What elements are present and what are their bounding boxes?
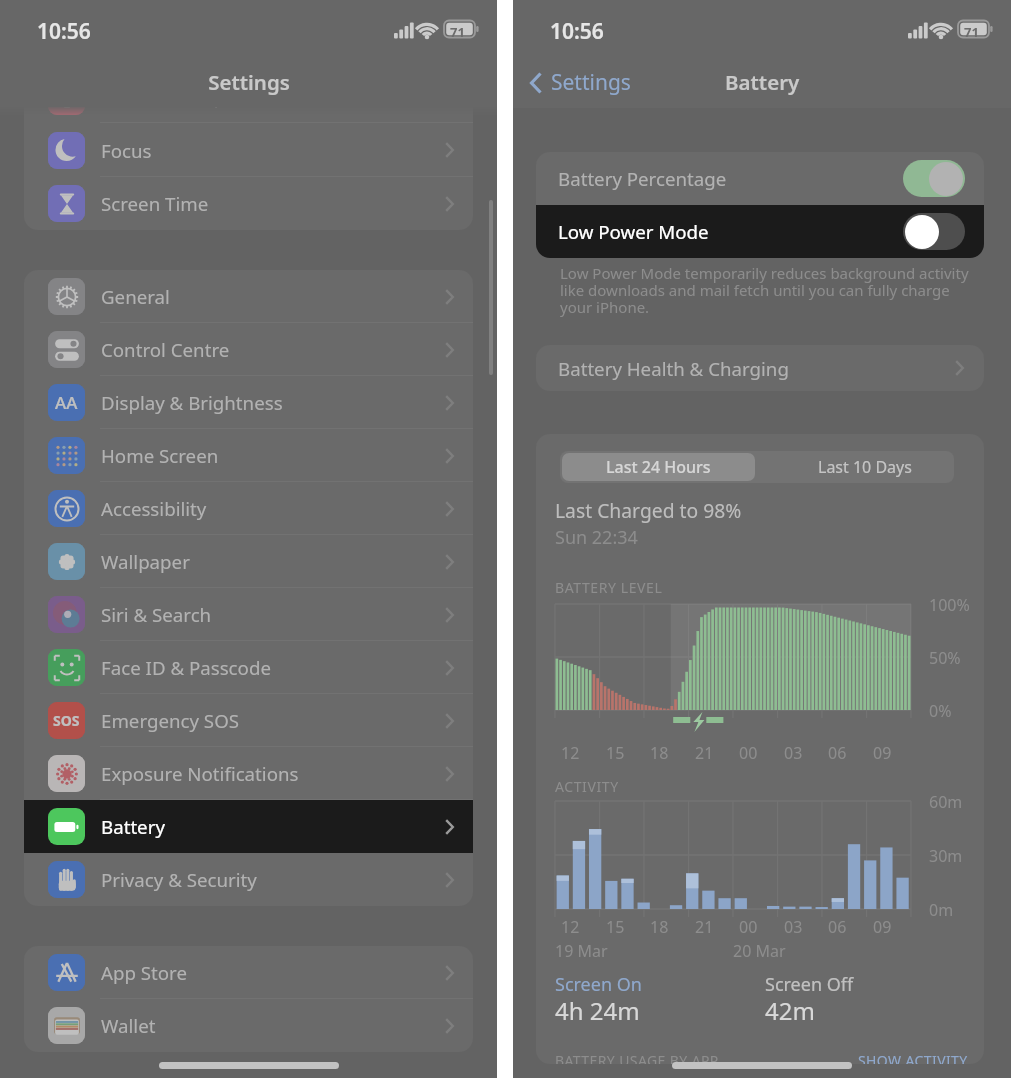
staticText: 21	[695, 742, 714, 764]
button[interactable]: Accessibility	[24, 482, 473, 535]
button[interactable]: Wallet	[24, 999, 473, 1052]
button[interactable]: Control Centre	[24, 323, 473, 376]
staticText: Settings	[551, 68, 631, 97]
staticText: 42m	[765, 994, 815, 1027]
staticText: 12	[561, 742, 580, 764]
staticText: SOS	[53, 711, 80, 730]
staticText: Battery	[725, 68, 800, 96]
staticText: 19 Mar	[555, 940, 608, 962]
staticText: Last 24 Hours	[606, 456, 711, 478]
button[interactable]: Settings	[530, 68, 631, 97]
button[interactable]: Battery Percentage	[536, 152, 984, 205]
staticText: 15	[606, 916, 625, 938]
staticText: ACTIVITY	[555, 777, 619, 796]
staticText: 10:56	[37, 17, 91, 46]
staticText: 30m	[929, 845, 963, 867]
staticText: Sounds & Haptics	[101, 84, 255, 109]
staticText: Display & Brightness	[101, 390, 283, 415]
staticText: Settings	[208, 68, 290, 96]
button[interactable]: Siri & Search	[24, 588, 473, 641]
staticText: 100%	[929, 594, 970, 616]
button[interactable]: General	[24, 270, 473, 323]
button[interactable]: Last 10 Days	[757, 451, 954, 483]
staticText: 60m	[929, 791, 963, 813]
staticText: Control Centre	[101, 337, 230, 362]
staticText: Screen Time	[101, 191, 209, 216]
staticText: Sun 22:34	[555, 525, 638, 550]
staticText: 4h 24m	[555, 994, 640, 1027]
staticText: Focus	[101, 138, 152, 163]
staticText: General	[101, 284, 170, 309]
staticText: Screen On	[555, 972, 642, 997]
button[interactable]: Home Screen	[24, 429, 473, 482]
staticText: Low Power Mode	[558, 219, 709, 244]
button[interactable]: Privacy & Security	[24, 853, 473, 906]
staticText: SHOW ACTIVITY	[858, 1051, 968, 1064]
staticText: 12	[561, 916, 580, 938]
staticText: 09	[873, 916, 892, 938]
staticText: 18	[650, 742, 669, 764]
staticText: Wallet	[101, 1013, 156, 1038]
staticText: Wallpaper	[101, 549, 190, 574]
staticText: AA	[55, 391, 78, 414]
staticText: 50%	[929, 647, 961, 669]
staticText: 09	[873, 742, 892, 764]
button[interactable]: Exposure Notifications	[24, 747, 473, 800]
staticText: Exposure Notifications	[101, 761, 299, 786]
staticText: Emergency SOS	[101, 708, 239, 733]
staticText: Last Charged to 98%	[555, 497, 742, 523]
staticText: Low Power Mode temporarily reduces backg…	[560, 263, 969, 317]
button[interactable]: Low Power Mode	[536, 205, 984, 258]
button[interactable]: Screen Time	[24, 177, 473, 230]
staticText: 71	[964, 23, 979, 41]
staticText: 0%	[929, 700, 952, 722]
button[interactable]: AA	[24, 376, 473, 429]
staticText: 71	[450, 23, 465, 41]
staticText: App Store	[101, 960, 187, 985]
button[interactable]: Wallpaper	[24, 535, 473, 588]
staticText: Battery	[101, 814, 165, 839]
button[interactable]: Face ID & Passcode	[24, 641, 473, 694]
staticText: 06	[828, 742, 847, 764]
button[interactable]: SHOW ACTIVITY	[854, 1047, 972, 1064]
button[interactable]: Focus	[24, 123, 473, 177]
staticText: 21	[695, 916, 714, 938]
staticText: Screen Off	[765, 972, 854, 997]
staticText: BATTERY USAGE BY APP	[555, 1051, 719, 1064]
staticText: Battery Percentage	[558, 166, 727, 191]
button[interactable]: Battery	[24, 800, 473, 853]
staticText: Home Screen	[101, 443, 219, 468]
button[interactable]: Battery Health & Charging	[536, 345, 984, 391]
button[interactable]: App Store	[24, 946, 473, 999]
staticText: BATTERY LEVEL	[555, 578, 663, 597]
staticText: Last 10 Days	[818, 456, 912, 478]
button[interactable]: Sounds & Haptics	[24, 69, 473, 123]
staticText: 10:56	[550, 17, 604, 46]
staticText: Accessibility	[101, 496, 207, 521]
staticText: 06	[828, 916, 847, 938]
staticText: 20 Mar	[733, 940, 786, 962]
staticText: Siri & Search	[101, 602, 212, 627]
staticText: 03	[784, 916, 803, 938]
button[interactable]: SOS	[24, 694, 473, 747]
staticText: 00	[739, 916, 758, 938]
staticText: 18	[650, 916, 669, 938]
staticText: 15	[606, 742, 625, 764]
staticText: Battery Health & Charging	[558, 356, 789, 381]
staticText: Face ID & Passcode	[101, 655, 271, 680]
staticText: 00	[739, 742, 758, 764]
staticText: 0m	[929, 899, 954, 921]
button[interactable]: Last 24 Hours	[562, 453, 755, 481]
staticText: 03	[784, 742, 803, 764]
staticText: Privacy & Security	[101, 867, 257, 892]
